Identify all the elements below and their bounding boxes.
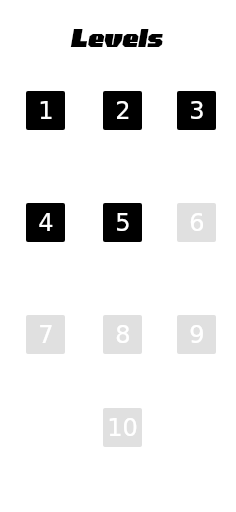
button[interactable]: 6 [177, 203, 216, 242]
button[interactable]: 10 [103, 408, 142, 447]
staticText: 4 [38, 209, 54, 237]
button[interactable]: 7 [26, 315, 65, 354]
button[interactable]: 1 [26, 91, 65, 130]
staticText: 7 [38, 321, 54, 349]
staticText: 8 [115, 321, 131, 349]
staticText: 5 [115, 209, 131, 237]
staticText: 10 [107, 414, 138, 442]
staticText: 2 [115, 97, 131, 125]
button[interactable]: 5 [103, 203, 142, 242]
button[interactable]: 8 [103, 315, 142, 354]
staticText: 9 [189, 321, 205, 349]
button[interactable]: 3 [177, 91, 216, 130]
staticText: 6 [189, 209, 205, 237]
button[interactable]: 2 [103, 91, 142, 130]
button[interactable]: 9 [177, 315, 216, 354]
button[interactable]: 4 [26, 203, 65, 242]
staticText: 3 [189, 97, 205, 125]
staticText: 1 [38, 97, 54, 125]
staticText: Levels [70, 23, 163, 52]
